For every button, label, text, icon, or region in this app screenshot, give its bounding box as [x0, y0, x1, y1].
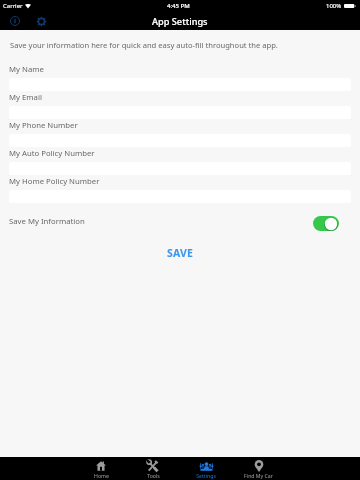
staticText: 4:45 PM — [167, 2, 190, 10]
staticText: App Settings — [152, 15, 208, 28]
staticText: Carrier — [3, 2, 23, 10]
button[interactable]: SAVE — [151, 243, 210, 263]
button[interactable]: My Auto Policy Number — [0, 148, 360, 175]
button[interactable]: Home — [75, 459, 127, 479]
staticText: My Home Policy Number — [9, 176, 100, 187]
button[interactable]: Save My Information — [9, 212, 339, 231]
staticText: My Auto Policy Number — [9, 148, 95, 159]
button[interactable]: My Home Policy Number — [0, 176, 360, 203]
button[interactable]: My Email — [0, 92, 360, 119]
staticText: Save your information here for quick and… — [10, 40, 278, 50]
staticText: My Email — [9, 92, 42, 103]
staticText: Tools — [147, 472, 160, 479]
button[interactable]: My Phone Number — [0, 120, 360, 147]
button[interactable]: Info — [5, 12, 25, 30]
staticText: My Phone Number — [9, 120, 78, 131]
button[interactable]: Find My Car — [232, 459, 285, 479]
button[interactable]: Tools — [127, 459, 179, 479]
staticText: My Name — [9, 64, 44, 75]
staticText: Home — [94, 472, 109, 479]
staticText: Settings — [196, 472, 216, 479]
button[interactable]: Save My Information toggle — [313, 216, 339, 231]
staticText: SAVE — [167, 246, 194, 260]
staticText: Save My Information — [9, 216, 85, 227]
button[interactable]: My Name — [0, 64, 360, 91]
button[interactable]: Settings — [179, 459, 232, 479]
staticText: Find My Car — [244, 472, 273, 479]
staticText: 100% — [326, 2, 342, 10]
button[interactable]: Settings — [31, 12, 51, 30]
